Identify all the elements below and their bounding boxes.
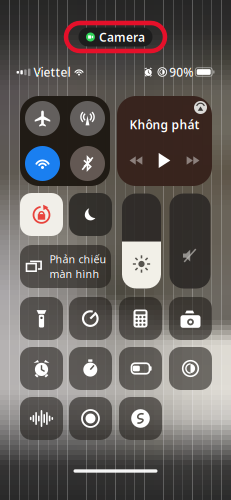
button[interactable]: Play [159, 153, 170, 168]
button[interactable]: Shazam [119, 397, 162, 440]
button[interactable]: Alarm [20, 347, 63, 390]
button[interactable]: Bluetooth [70, 146, 105, 181]
button[interactable]: Brightness [122, 193, 161, 288]
button[interactable]: Next track [186, 156, 200, 165]
staticText: Viettel [33, 64, 70, 80]
staticText: 90% [169, 64, 193, 80]
staticText: Phản chiếu [49, 252, 106, 266]
button[interactable]: Low Power Mode [119, 347, 162, 390]
button[interactable]: Calculator [119, 297, 162, 340]
button[interactable]: Camera [169, 297, 212, 340]
staticText: màn hình [49, 267, 99, 281]
staticText: Không phát [129, 116, 199, 132]
button[interactable]: Screen Recording [69, 397, 112, 440]
button[interactable]: Do Not Disturb [69, 193, 112, 236]
button[interactable]: Sound Recognition [20, 397, 63, 440]
button[interactable]: Phản chiếu [20, 245, 111, 288]
button[interactable]: Flashlight [20, 297, 63, 340]
button[interactable]: Wi-Fi [25, 146, 60, 181]
button[interactable]: Previous track [129, 156, 143, 165]
button[interactable]: Rotation Lock [20, 193, 63, 236]
button[interactable]: Airplane Mode [25, 101, 60, 136]
button[interactable]: AirPlay [194, 101, 207, 114]
button[interactable]: Dark Mode [169, 347, 212, 390]
staticText: Camera [99, 29, 145, 45]
button[interactable]: Volume [169, 193, 210, 288]
button[interactable]: Stopwatch [69, 347, 112, 390]
button[interactable]: Cellular Data [70, 101, 105, 136]
button[interactable]: Timer [69, 297, 112, 340]
